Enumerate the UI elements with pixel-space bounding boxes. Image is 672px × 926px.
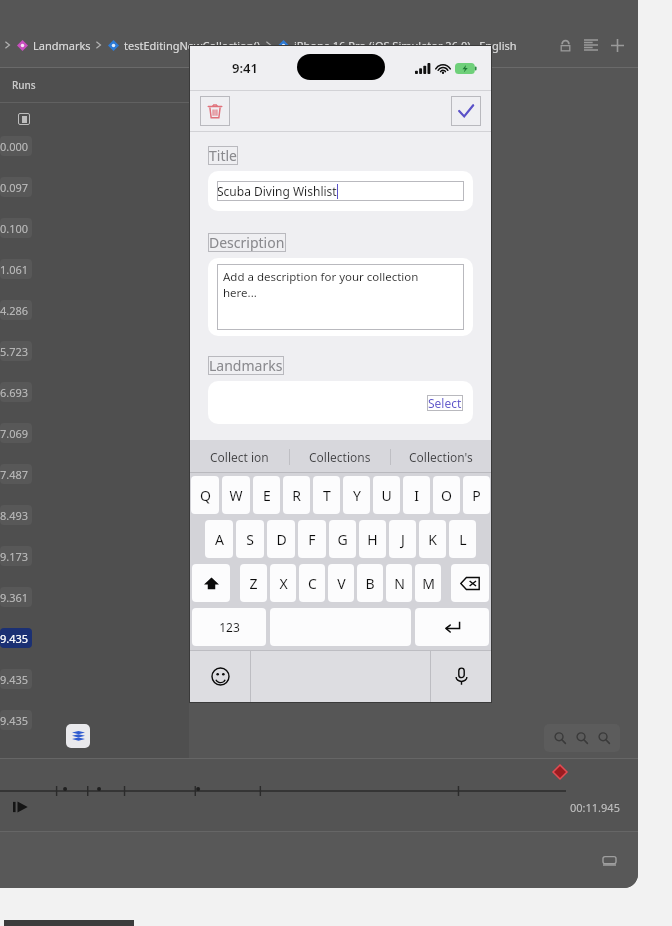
button[interactable]: Add <box>604 32 630 58</box>
button[interactable]: T <box>313 476 340 514</box>
button[interactable]: B <box>357 564 383 602</box>
button[interactable]: Z <box>240 564 267 602</box>
staticText: Scuba Diving Wishlist <box>217 183 337 199</box>
button[interactable]: W <box>222 476 250 514</box>
button[interactable]: Save collection <box>451 96 481 126</box>
button[interactable]: Shift <box>192 564 230 602</box>
staticText: 9:41 <box>232 59 258 77</box>
button[interactable]: 4.286 <box>0 300 32 320</box>
button[interactable]: 7.487 <box>0 464 32 484</box>
staticText: N <box>394 574 405 593</box>
staticText: D <box>276 530 287 549</box>
button[interactable]: F <box>298 520 326 558</box>
staticText: 6.693 <box>0 385 29 400</box>
staticText: Title <box>209 146 237 165</box>
staticText: P <box>472 486 481 505</box>
button[interactable]: View hierarchy <box>66 724 90 748</box>
button[interactable]: 9.435 <box>0 628 32 648</box>
staticText: Landmarks <box>209 356 283 375</box>
button[interactable]: Step <box>10 796 32 818</box>
button[interactable]: S <box>236 520 264 558</box>
staticText: 9.435 <box>0 713 29 728</box>
button[interactable]: 0.097 <box>0 177 32 197</box>
button[interactable]: Collections <box>290 440 390 473</box>
staticText: J <box>401 530 405 549</box>
staticText: Q <box>200 486 211 505</box>
staticText: 0.100 <box>0 221 29 236</box>
staticText: V <box>337 574 346 593</box>
button[interactable]: Select <box>427 395 463 411</box>
staticText: F <box>308 530 316 549</box>
button[interactable]: U <box>373 476 400 514</box>
staticText: O <box>441 486 452 505</box>
button[interactable]: 9.361 <box>0 587 32 607</box>
button[interactable]: Lock <box>552 32 578 58</box>
button[interactable]: A <box>205 520 233 558</box>
staticText: E <box>263 486 271 505</box>
button[interactable]: D <box>267 520 295 558</box>
button[interactable]: Q <box>191 476 219 514</box>
staticText: Z <box>249 574 258 593</box>
staticText: L <box>459 530 467 549</box>
button[interactable]: 1.061 <box>0 259 32 279</box>
button[interactable]: 0.100 <box>0 218 32 238</box>
button[interactable]: Filter <box>578 32 604 58</box>
staticText: T <box>323 486 331 505</box>
button[interactable]: G <box>329 520 356 558</box>
button[interactable]: 7.069 <box>0 423 32 443</box>
button[interactable]: Scuba Diving Wishlist <box>208 171 473 211</box>
staticText: 9.435 <box>0 631 29 646</box>
button[interactable]: 9.435 <box>0 669 32 689</box>
staticText: 9.361 <box>0 590 29 605</box>
button[interactable]: Backspace <box>451 564 489 602</box>
button[interactable]: V <box>328 564 354 602</box>
button[interactable]: Add a description for your collection he… <box>208 258 473 336</box>
button[interactable]: C <box>299 564 325 602</box>
button[interactable]: Collect ion <box>190 440 289 473</box>
button[interactable]: 9.173 <box>0 546 32 566</box>
button[interactable]: Emoji <box>190 650 250 702</box>
staticText: R <box>292 486 301 505</box>
staticText: B <box>365 574 375 593</box>
staticText: 7.487 <box>0 467 29 482</box>
button[interactable]: R <box>283 476 310 514</box>
button[interactable]: M <box>415 564 441 602</box>
button[interactable]: N <box>386 564 412 602</box>
button[interactable]: Delete collection <box>200 96 230 126</box>
staticText: W <box>229 486 243 505</box>
button[interactable]: Zoom out <box>549 727 571 749</box>
button[interactable]: I <box>403 476 430 514</box>
staticText: iPhone 16 Pro (iOS Simulator 26.0) · Eng… <box>294 38 517 53</box>
button[interactable]: X <box>270 564 296 602</box>
button[interactable]: L <box>449 520 476 558</box>
button[interactable]: Console <box>598 849 620 871</box>
staticText: G <box>337 530 348 549</box>
staticText: testEditingNewCollection() <box>124 38 261 53</box>
staticText: 8.493 <box>0 508 29 523</box>
button[interactable]: H <box>359 520 386 558</box>
button[interactable]: Y <box>343 476 370 514</box>
button[interactable]: 8.493 <box>0 505 32 525</box>
button[interactable]: Return <box>415 608 489 646</box>
button[interactable]: 5.723 <box>0 341 32 361</box>
staticText: A <box>215 530 224 549</box>
staticText: 7.069 <box>0 426 29 441</box>
button[interactable]: P <box>463 476 490 514</box>
button[interactable]: Zoom in <box>593 727 615 749</box>
button[interactable]: E <box>253 476 280 514</box>
button[interactable]: 6.693 <box>0 382 32 402</box>
button[interactable]: Collection's <box>391 440 491 473</box>
staticText: 0.097 <box>0 180 29 195</box>
staticText: 4.286 <box>0 303 29 318</box>
button[interactable]: 9.435 <box>0 710 32 730</box>
button[interactable]: Dictation <box>431 650 491 702</box>
staticText: Y <box>353 486 361 505</box>
button[interactable]: Zoom to fit <box>571 727 593 749</box>
button[interactable]: J <box>389 520 416 558</box>
button[interactable]: K <box>419 520 446 558</box>
button[interactable]: O <box>433 476 460 514</box>
staticText: Description <box>209 233 285 252</box>
button[interactable]: 0.000 <box>0 136 32 156</box>
button[interactable]: 123 <box>192 608 266 646</box>
